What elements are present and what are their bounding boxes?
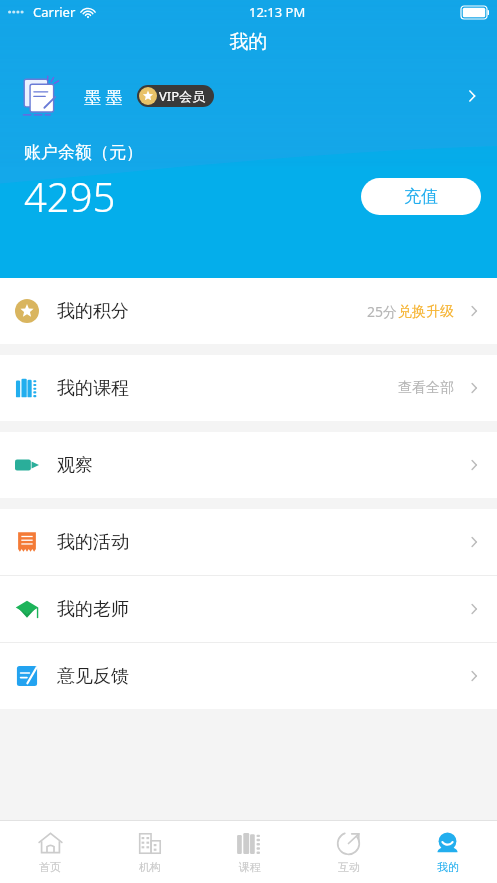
button[interactable]: 互动 [299, 821, 398, 883]
button[interactable]: 课程 [200, 821, 299, 883]
staticText: 意见反馈 [57, 665, 129, 688]
button[interactable]: 我的活动 [0, 509, 497, 575]
staticText: 我的课程 [57, 377, 129, 400]
staticText: 我的 [437, 860, 459, 874]
staticText: 我的积分 [57, 300, 129, 323]
staticText: 12:13 PM [249, 3, 306, 21]
staticText: 4295 [24, 169, 116, 223]
staticText: 查看全部 [398, 379, 454, 397]
staticText: 账户余额（元） [24, 142, 143, 163]
button[interactable]: 观察 [0, 432, 497, 498]
button[interactable]: 我的积分 [0, 278, 497, 344]
staticText: 充值 [404, 186, 438, 207]
button[interactable]: 充值 [361, 178, 481, 215]
other: Open profile [463, 87, 481, 105]
staticText: 首页 [39, 860, 61, 874]
staticText: VIP会员 [159, 87, 206, 105]
button[interactable]: 我的 [398, 821, 497, 883]
staticText: 互动 [338, 860, 360, 874]
staticText: 我的老师 [57, 598, 129, 621]
button[interactable]: 机构 [100, 821, 200, 883]
staticText: Carrier [33, 3, 76, 21]
staticText: 我的 [0, 30, 497, 54]
button[interactable]: 墨 墨 [0, 68, 497, 124]
button[interactable]: 我的老师 [0, 576, 497, 642]
staticText: 观察 [57, 454, 93, 477]
staticText: 课程 [239, 860, 261, 874]
staticText: 墨 墨 [84, 85, 123, 108]
button[interactable]: 意见反馈 [0, 643, 497, 709]
staticText: 25分 [367, 302, 398, 321]
staticText: 兑换升级 [398, 303, 454, 321]
button[interactable]: 我的课程 [0, 355, 497, 421]
button[interactable]: 首页 [0, 821, 100, 883]
staticText: 机构 [139, 860, 161, 874]
staticText: 我的活动 [57, 531, 129, 554]
